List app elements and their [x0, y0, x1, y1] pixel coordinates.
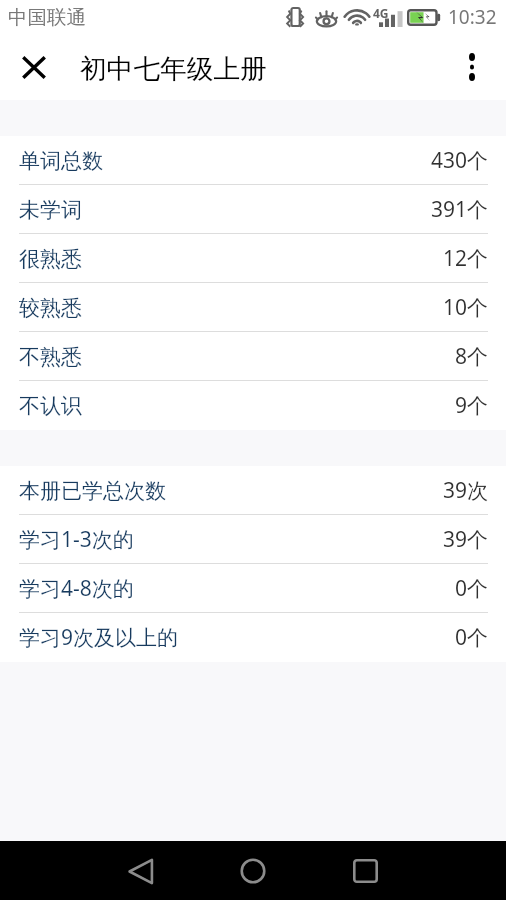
staticText: 很熟悉 [19, 246, 82, 272]
staticText: 学习4-8次的 [19, 574, 134, 603]
staticText: 10:32 [448, 4, 497, 30]
button[interactable]: Recent apps [337, 843, 393, 899]
button[interactable]: 本册已学总次数 [0, 466, 506, 515]
staticText: 不熟悉 [19, 344, 82, 370]
button[interactable]: More options [450, 45, 494, 89]
staticText: 0个 [455, 623, 489, 652]
button[interactable]: 单词总数 [0, 136, 506, 185]
staticText: 0个 [455, 574, 489, 603]
button[interactable]: 未学词 [0, 185, 506, 234]
staticText: 10个 [443, 293, 489, 322]
staticText: 9个 [455, 391, 489, 420]
button[interactable]: Home [225, 843, 281, 899]
staticText: 430个 [431, 146, 489, 175]
staticText: 本册已学总次数 [19, 478, 166, 504]
button[interactable]: 学习1-3次的 [0, 515, 506, 564]
staticText: 8个 [455, 342, 489, 371]
staticText: 初中七年级上册 [80, 52, 267, 86]
button[interactable]: 不认识 [0, 381, 506, 430]
staticText: 学习1-3次的 [19, 525, 134, 554]
staticText: 中国联通 [8, 5, 86, 30]
button[interactable]: Back [113, 843, 169, 899]
staticText: 12个 [443, 244, 489, 273]
button[interactable]: Close [6, 39, 62, 95]
staticText: 学习9次及以上的 [19, 623, 179, 652]
staticText: 4G [373, 5, 389, 21]
staticText: 未学词 [19, 197, 82, 223]
staticText: 较熟悉 [19, 295, 82, 321]
button[interactable]: 不熟悉 [0, 332, 506, 381]
staticText: 单词总数 [19, 148, 103, 174]
button[interactable]: 学习9次及以上的 [0, 613, 506, 662]
staticText: 391个 [431, 195, 489, 224]
button[interactable]: 很熟悉 [0, 234, 506, 283]
staticText: 39个 [443, 525, 489, 554]
staticText: 不认识 [19, 393, 82, 419]
button[interactable]: 较熟悉 [0, 283, 506, 332]
button[interactable]: 学习4-8次的 [0, 564, 506, 613]
staticText: 39次 [443, 476, 489, 505]
